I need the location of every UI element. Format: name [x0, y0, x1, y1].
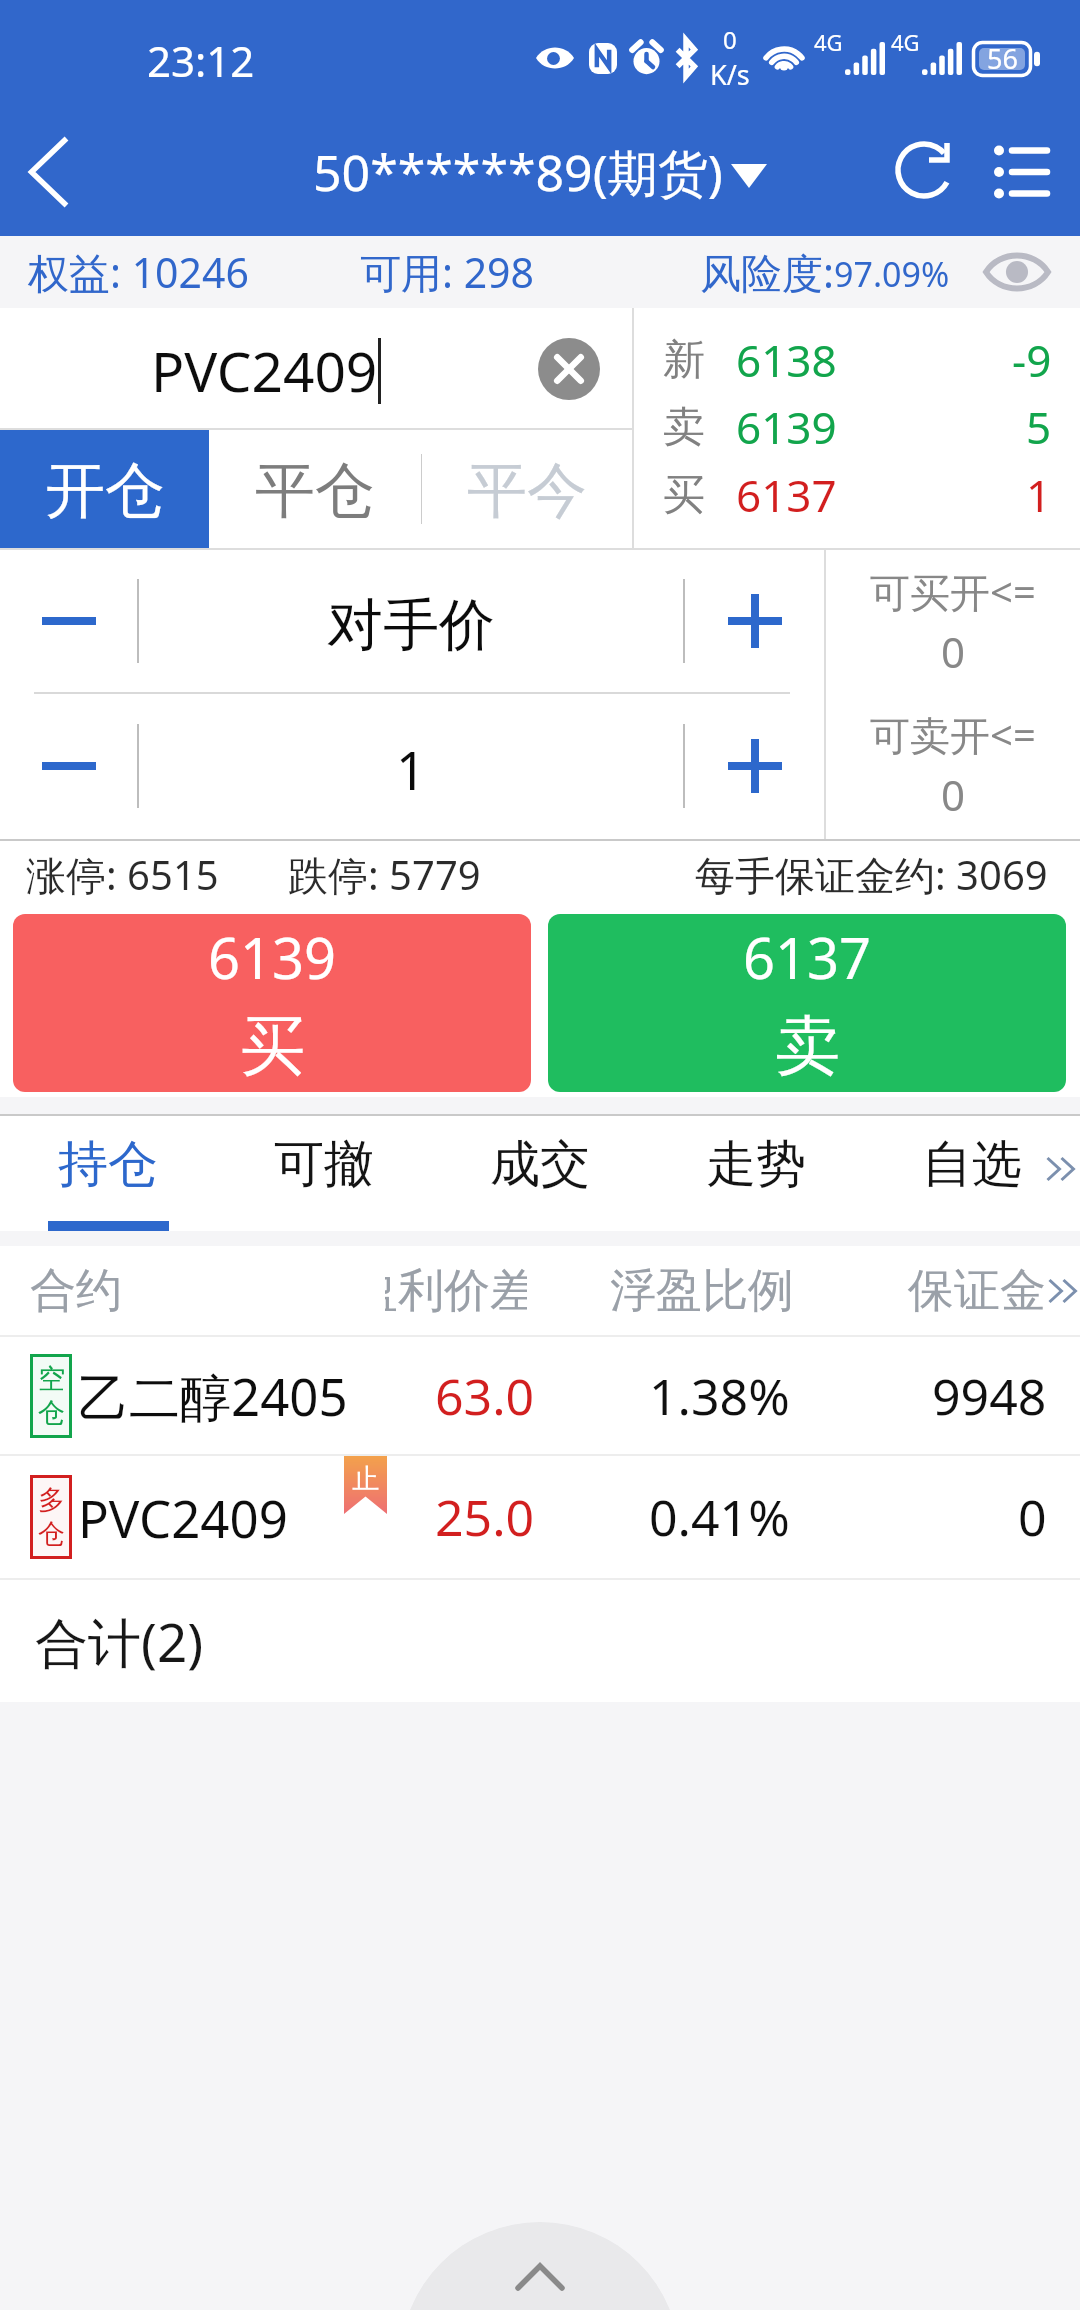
staticText: 卖	[663, 401, 705, 454]
staticText: 止	[352, 1462, 379, 1496]
button[interactable]: 可撤	[216, 1116, 432, 1231]
staticText: 97.09%	[834, 251, 950, 297]
button[interactable]: 平仓	[209, 430, 421, 548]
button[interactable]: 空	[0, 1337, 1080, 1454]
staticText: 买	[663, 469, 705, 522]
staticText: 多	[38, 1483, 65, 1517]
button[interactable]: 6139	[13, 914, 531, 1092]
staticText: 56	[987, 40, 1018, 77]
staticText: 跌停: 5779	[288, 847, 481, 902]
staticText: 0	[1018, 1483, 1047, 1551]
staticText: 0	[941, 623, 966, 680]
staticText: 走势	[706, 1133, 806, 1196]
staticText: 6137	[743, 919, 872, 995]
staticText: 平仓	[255, 453, 375, 529]
staticText: 涨停: 6515	[26, 847, 219, 902]
button[interactable]: More tabs	[1046, 1139, 1080, 1199]
staticText: 6138	[736, 330, 837, 390]
staticText: 每手保证金约: 3069	[695, 847, 1048, 902]
staticText: 63.0	[435, 1362, 535, 1430]
staticText: 新	[663, 334, 705, 387]
staticText: 空	[38, 1362, 65, 1396]
staticText: 可买开<=	[870, 564, 1036, 619]
button[interactable]: Decrease	[0, 694, 137, 837]
button[interactable]: 走势	[648, 1116, 864, 1231]
staticText: 6139	[208, 919, 337, 995]
staticText: 开仓	[45, 453, 165, 529]
staticText: 仓	[38, 1396, 65, 1430]
staticText: 可用: 298	[360, 244, 535, 300]
staticText: 可撤	[274, 1133, 374, 1196]
staticText: 9948	[932, 1362, 1047, 1430]
staticText: -9	[1012, 330, 1052, 390]
button[interactable]: More columns	[1048, 1266, 1080, 1316]
button[interactable]: Increase	[685, 550, 824, 692]
staticText: 1.38%	[649, 1362, 790, 1430]
staticText: PVC2409	[151, 333, 378, 408]
staticText: 合约	[30, 1262, 122, 1320]
staticText: 0	[941, 766, 966, 823]
staticText: 自选	[922, 1133, 1022, 1196]
staticText: 可卖开<=	[870, 707, 1036, 762]
staticText: 风险度:	[700, 244, 834, 300]
staticText: 仓	[38, 1517, 65, 1551]
button[interactable]: Increase	[685, 694, 824, 837]
staticText: 0	[723, 23, 737, 56]
staticText: 4G	[891, 27, 920, 57]
staticText: 成交	[490, 1133, 590, 1196]
staticText: 4G	[814, 27, 843, 57]
button[interactable]: Clear	[538, 338, 600, 400]
staticText: 23:12	[147, 32, 255, 89]
button[interactable]: Menu	[967, 108, 1075, 236]
staticText: 浮盈比例	[610, 1262, 794, 1320]
button[interactable]: 自选	[864, 1116, 1080, 1231]
staticText: 平今	[467, 453, 587, 529]
staticText: 5	[1026, 397, 1052, 457]
staticText: 合计(2)	[35, 1605, 204, 1677]
staticText: 权益: 10246	[28, 244, 249, 300]
button[interactable]: 成交	[432, 1116, 648, 1231]
button[interactable]: Scroll to top	[400, 2222, 680, 2310]
staticText: 6137	[736, 465, 837, 525]
button[interactable]: Toggle balance visibility	[979, 241, 1055, 303]
staticText: 对手价	[327, 590, 495, 661]
staticText: 6139	[736, 397, 837, 457]
staticText: 乙二醇2405	[78, 1361, 348, 1431]
staticText: PVC2409	[78, 1483, 288, 1552]
staticText: K/s	[710, 56, 750, 93]
staticText: 盈利价差	[385, 1262, 527, 1320]
button[interactable]: 持仓	[0, 1116, 216, 1231]
staticText: 0.41%	[649, 1483, 790, 1551]
button[interactable]: Refresh	[873, 108, 981, 236]
button[interactable]: 6137	[548, 914, 1066, 1092]
staticText: 1	[1026, 465, 1052, 525]
staticText: 1	[396, 734, 426, 805]
button[interactable]: 平今	[422, 430, 632, 548]
staticText: 持仓	[58, 1133, 158, 1196]
button[interactable]: Decrease	[0, 550, 137, 692]
staticText: 25.0	[435, 1483, 535, 1551]
staticText: 保证金	[908, 1262, 1046, 1320]
button[interactable]: Back	[0, 108, 98, 236]
button[interactable]: 开仓	[0, 430, 209, 548]
staticText: 卖	[775, 1005, 840, 1087]
staticText: 买	[240, 1005, 305, 1087]
button[interactable]: 多	[0, 1456, 1080, 1578]
staticText: 50******89(期货)	[313, 138, 723, 206]
